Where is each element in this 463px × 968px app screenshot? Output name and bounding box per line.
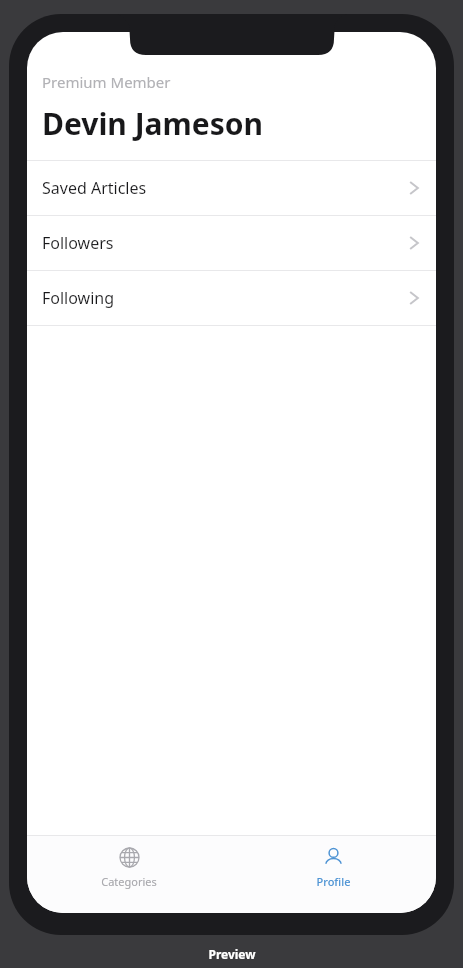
staticText: Categories (101, 874, 157, 889)
staticText: Following (42, 287, 115, 309)
staticText: Preview (208, 946, 256, 962)
staticText: Profile (316, 874, 351, 889)
staticText: Premium Member (42, 72, 171, 92)
staticText: Followers (42, 232, 114, 254)
staticText: Devin Jameson (42, 103, 264, 144)
staticText: Saved Articles (42, 177, 147, 199)
other: Categories (119, 847, 140, 868)
button[interactable]: Categories (27, 836, 231, 913)
button[interactable]: Profile (231, 836, 436, 913)
button[interactable]: Followers (27, 216, 436, 270)
button[interactable]: Following (27, 271, 436, 325)
other: Profile (323, 847, 344, 868)
button[interactable]: Saved Articles (27, 161, 436, 215)
